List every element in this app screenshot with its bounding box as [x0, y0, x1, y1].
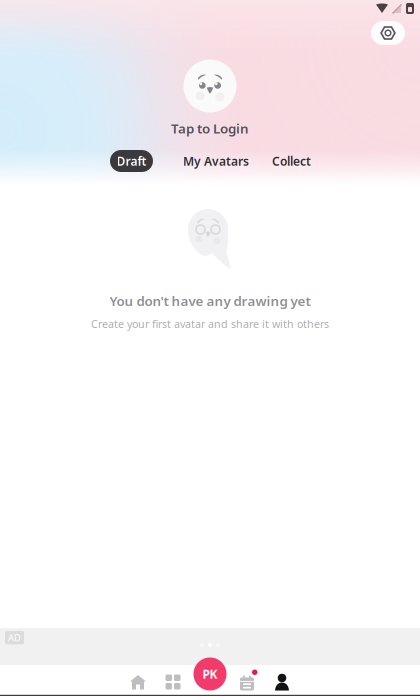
staticText: AD: [8, 631, 21, 644]
button[interactable]: Settings: [371, 21, 405, 45]
button[interactable]: Profile: [266, 667, 298, 697]
staticText: Tap to Login: [171, 119, 249, 137]
button[interactable]: Draft: [110, 150, 153, 172]
staticText: Draft: [116, 153, 146, 169]
staticText: My Avatars: [183, 153, 249, 169]
button[interactable]: Notes: [231, 667, 263, 697]
staticText: Create your first avatar and share it wi…: [91, 317, 329, 331]
button[interactable]: My Avatars: [182, 150, 250, 172]
staticText: Collect: [272, 153, 311, 169]
button[interactable]: Tap to Login: [150, 59, 270, 137]
button[interactable]: Home: [122, 667, 154, 697]
button[interactable]: Templates: [157, 667, 189, 697]
button[interactable]: Create: [193, 657, 226, 690]
button[interactable]: Collect: [271, 150, 312, 172]
staticText: PK: [202, 666, 217, 682]
staticText: You don't have any drawing yet: [109, 292, 310, 310]
